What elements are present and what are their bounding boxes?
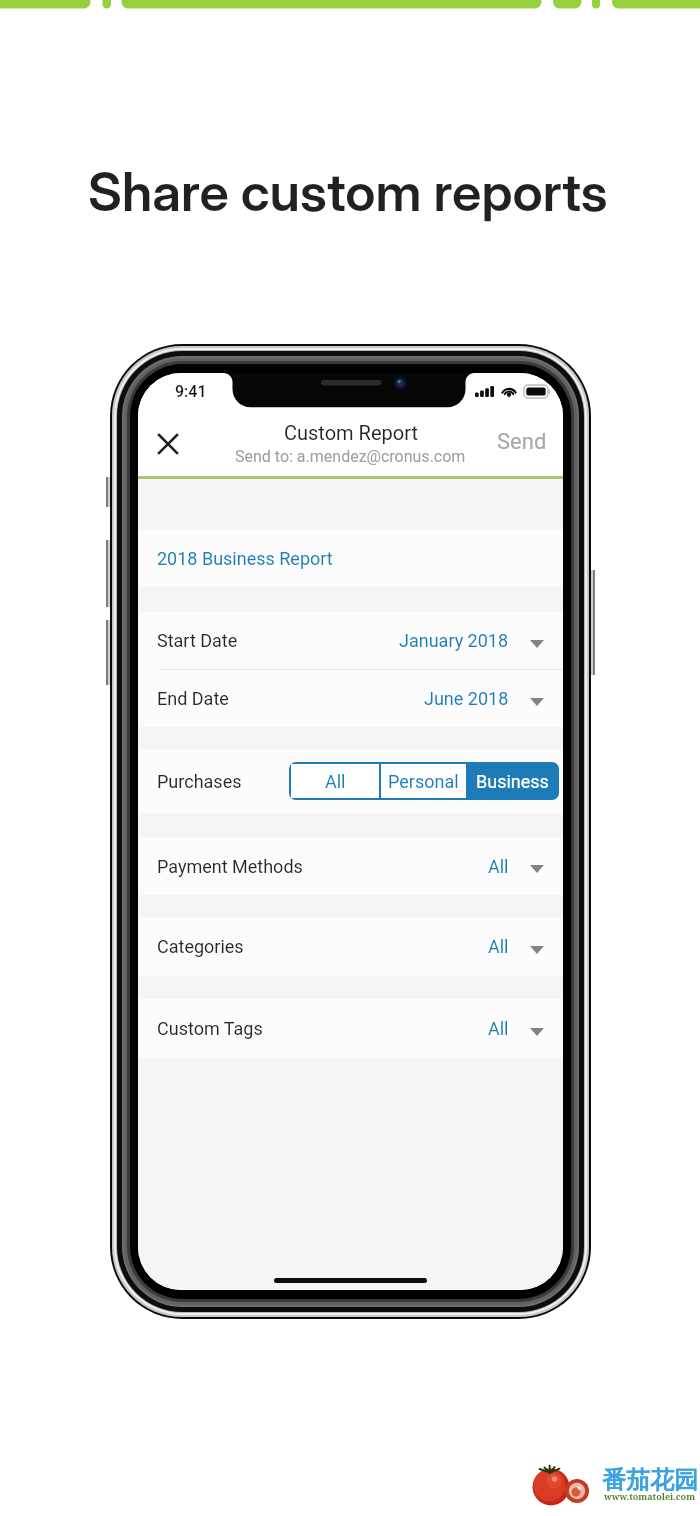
staticText: Share custom reports bbox=[88, 160, 608, 224]
button[interactable]: Send bbox=[481, 423, 563, 461]
button[interactable]: Personal bbox=[381, 764, 466, 798]
staticText: All bbox=[488, 1018, 509, 1039]
button[interactable]: End Date bbox=[138, 670, 563, 727]
staticText: Send bbox=[497, 429, 547, 455]
staticText: Send to: a.mendez@cronus.com bbox=[235, 447, 466, 466]
staticText: January 2018 bbox=[399, 630, 509, 651]
staticText: 番茄花园 bbox=[602, 1465, 698, 1495]
staticText: Categories bbox=[157, 936, 244, 957]
staticText: 2018 Business Report bbox=[157, 548, 333, 569]
staticText: Custom Report bbox=[284, 421, 418, 444]
staticText: Custom Tags bbox=[157, 1018, 263, 1039]
button[interactable]: Custom Tags bbox=[138, 999, 563, 1058]
staticText: 9:41 bbox=[175, 382, 207, 401]
button[interactable]: 2018 Business Report bbox=[138, 530, 563, 587]
button[interactable]: Close bbox=[147, 423, 188, 464]
staticText: www.tomatolei.com bbox=[604, 1490, 696, 1502]
staticText: Payment Methods bbox=[157, 856, 303, 877]
button[interactable]: Business bbox=[468, 764, 557, 798]
button[interactable]: Categories bbox=[138, 917, 563, 976]
staticText: Business bbox=[476, 771, 549, 792]
staticText: All bbox=[325, 771, 346, 792]
button[interactable]: All bbox=[291, 764, 379, 798]
staticText: All bbox=[488, 856, 509, 877]
button[interactable]: Start Date bbox=[138, 612, 563, 669]
staticText: Personal bbox=[388, 771, 459, 792]
staticText: End Date bbox=[157, 688, 229, 709]
staticText: Purchases bbox=[157, 771, 242, 792]
button[interactable]: Payment Methods bbox=[138, 837, 563, 895]
staticText: June 2018 bbox=[424, 688, 509, 709]
staticText: All bbox=[488, 936, 509, 957]
staticText: Start Date bbox=[157, 630, 238, 651]
